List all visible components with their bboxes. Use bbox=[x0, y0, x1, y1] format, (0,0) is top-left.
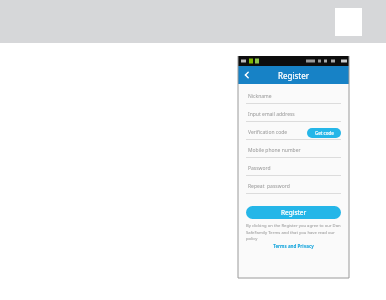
staticText: Input email address bbox=[248, 111, 295, 118]
staticText: By clicking on the Register you agree to… bbox=[246, 223, 341, 241]
button[interactable]: Verification code bbox=[246, 126, 341, 144]
button[interactable]: Register bbox=[246, 206, 341, 219]
staticText: Mobile phone number bbox=[248, 147, 301, 154]
staticText: Register bbox=[281, 208, 307, 217]
button[interactable]: Back bbox=[238, 66, 256, 84]
staticText: Register bbox=[278, 70, 310, 81]
button[interactable]: Input email address bbox=[246, 108, 341, 126]
button[interactable]: Repeat password bbox=[246, 180, 341, 198]
button[interactable]: Password bbox=[246, 162, 341, 180]
staticText: Repeat password bbox=[248, 183, 290, 190]
button[interactable]: Mobile phone number bbox=[246, 144, 341, 162]
staticText: Password bbox=[248, 165, 271, 172]
button[interactable]: Nickname bbox=[246, 90, 341, 108]
staticText: Verification code bbox=[248, 129, 288, 136]
staticText: Get code bbox=[315, 130, 334, 136]
staticText: Nickname bbox=[248, 93, 272, 100]
button[interactable]: Get code bbox=[307, 128, 341, 138]
button[interactable]: Terms and Privacy bbox=[273, 243, 314, 249]
